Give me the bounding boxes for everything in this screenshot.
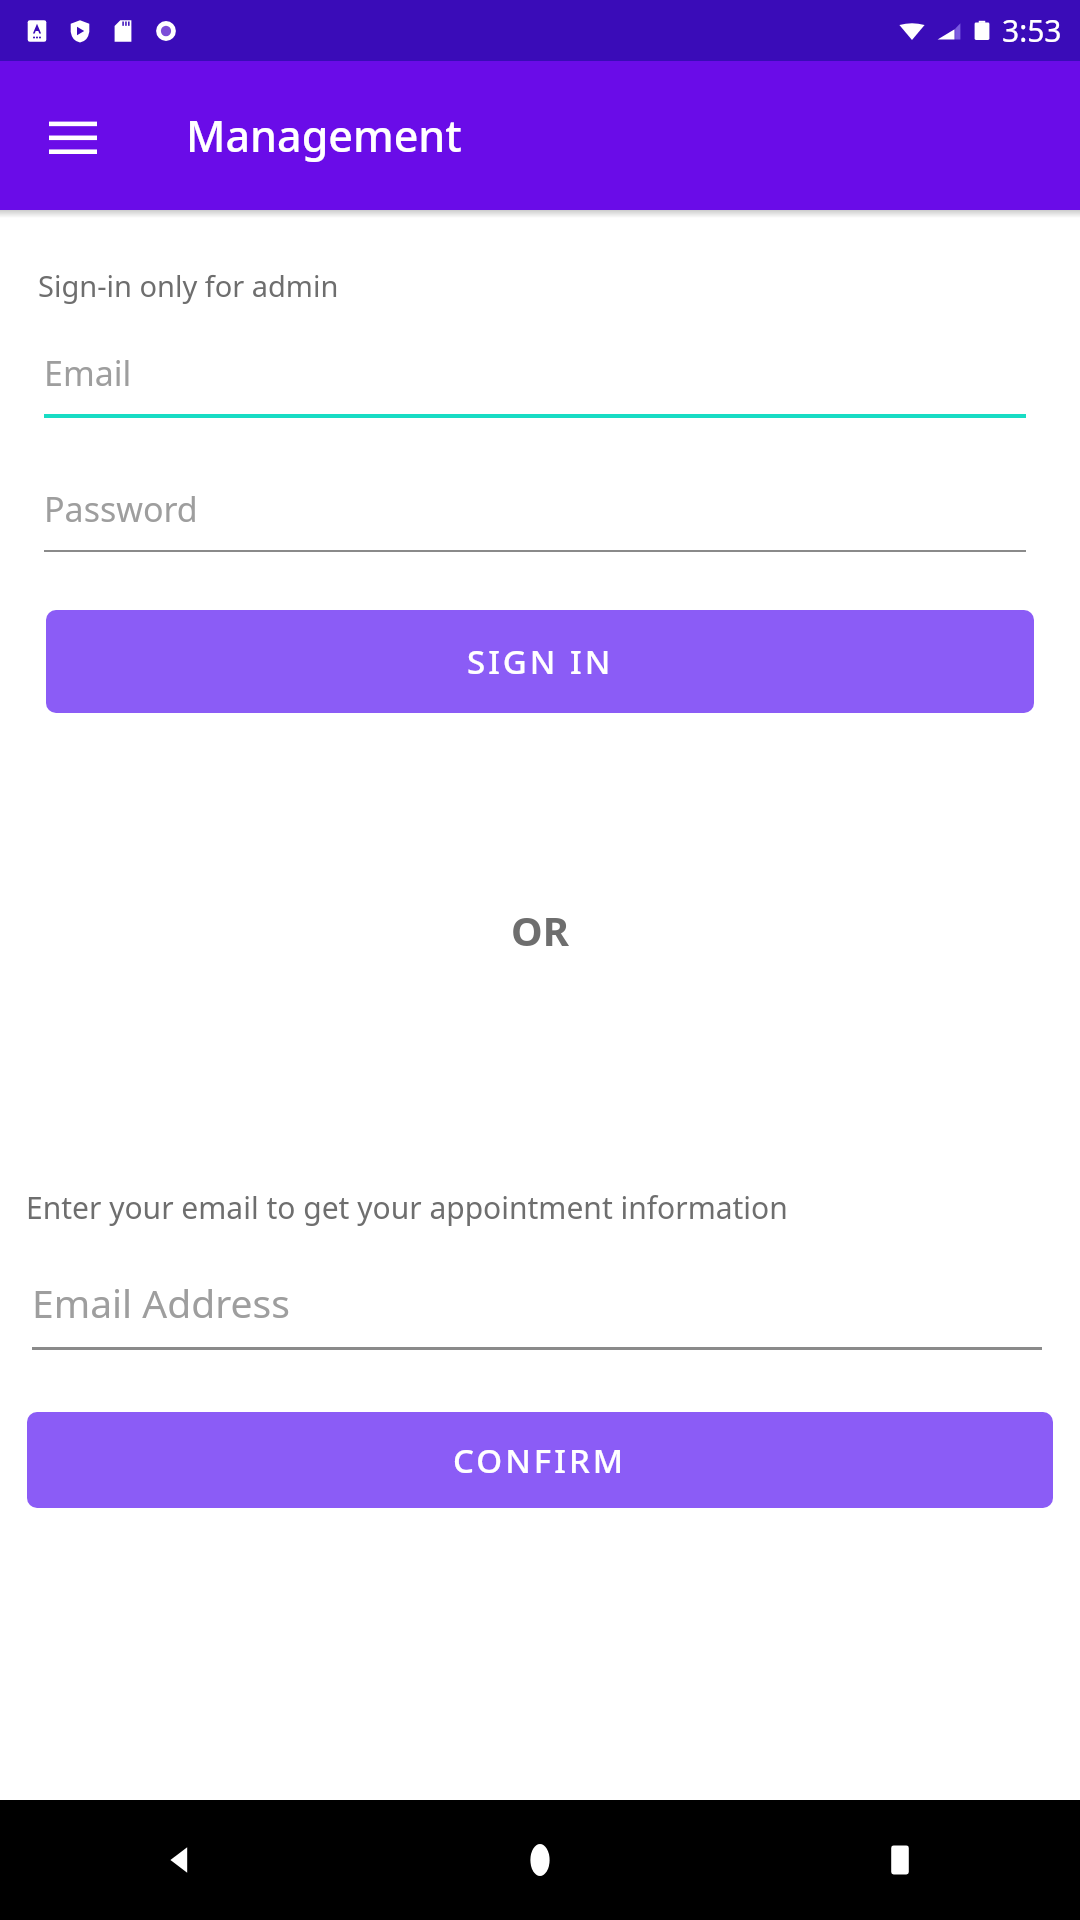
button[interactable]: SIGN IN [46,610,1034,713]
staticText: Enter your email to get your appointment… [26,1187,788,1228]
button[interactable]: Back [0,1800,360,1920]
button[interactable]: Home [360,1800,720,1920]
staticText: Sign-in only for admin [38,266,339,305]
staticText: Password [44,486,198,532]
button[interactable]: Open navigation menu [28,91,118,181]
staticText: 3:53 [1002,10,1062,51]
button[interactable]: Email address input field [32,1276,1042,1350]
staticText: OR [0,903,1080,957]
staticText: Management [186,106,462,165]
button[interactable]: Recent apps [720,1800,1080,1920]
button[interactable]: Email input field [44,350,1026,418]
staticText: CONFIRM [453,1438,627,1483]
staticText: SIGN IN [467,639,614,684]
button[interactable]: Password input field [44,486,1026,552]
staticText: Email Address [32,1276,290,1329]
staticText: Email [44,350,132,396]
button[interactable]: CONFIRM [27,1412,1053,1508]
